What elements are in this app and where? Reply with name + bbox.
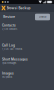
staticText: Contacts — [2, 23, 16, 27]
button[interactable]: Contacts — [0, 23, 54, 31]
staticText: 3,168 messages — [2, 62, 16, 65]
staticText: Restore — [3, 15, 15, 19]
staticText: Browsi Backup — [6, 6, 30, 10]
staticText: 2,481 contacts — [2, 28, 17, 31]
staticText: Images — [2, 71, 14, 75]
staticText: 1,024 call records — [2, 48, 22, 51]
staticText: Call Log — [2, 43, 15, 47]
staticText: Device — [39, 15, 46, 18]
button[interactable]: Short Messages — [0, 57, 54, 65]
button[interactable]: Device — [35, 14, 50, 20]
staticText: 912 photos — [2, 76, 12, 79]
button[interactable]: Images — [0, 71, 54, 79]
button[interactable]: Call Log — [0, 43, 54, 51]
staticText: Short Messages — [2, 57, 28, 61]
